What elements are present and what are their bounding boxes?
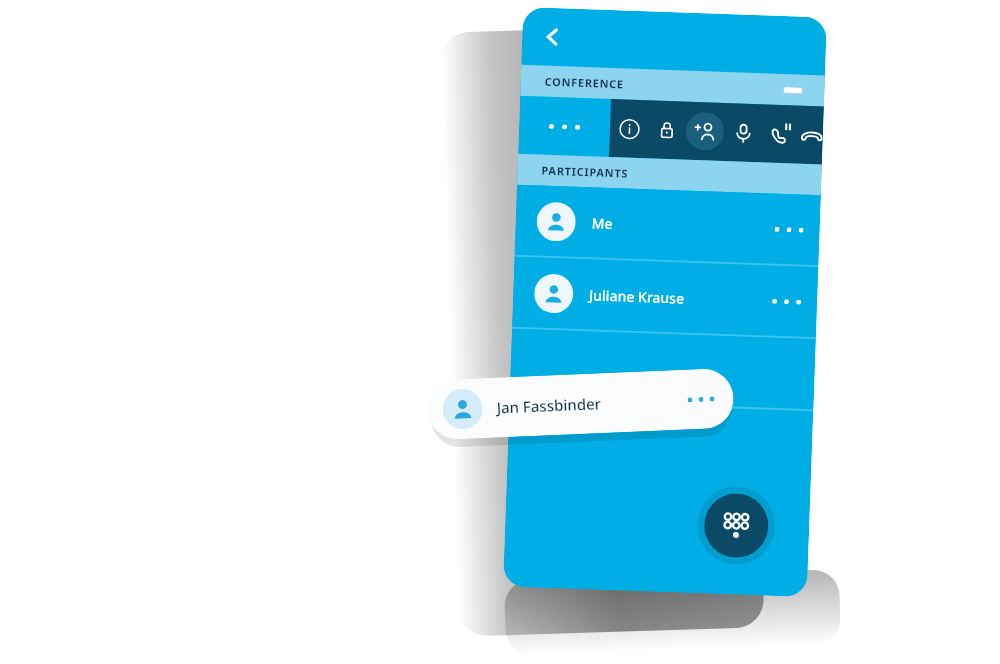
button[interactable]: More conference options [518,96,611,157]
button[interactable]: Lock conference [647,110,687,150]
button[interactable]: Mute microphone [723,113,763,152]
button[interactable]: Options for Jan Fassbinder [676,375,724,423]
staticText: Me [591,213,613,233]
button[interactable]: PARTICIPANTS [517,154,822,195]
button[interactable] [509,329,816,409]
button[interactable]: Hold call [761,114,801,154]
staticText: Jan Fassbinder [496,393,602,417]
staticText: Juliane Krause [589,285,684,308]
button[interactable]: End call [799,116,824,154]
button[interactable]: Add participant [685,112,725,151]
button[interactable]: CONFERENCE [520,65,825,106]
button[interactable]: Back [529,14,575,60]
staticText: CONFERENCE [544,74,625,91]
button[interactable]: Me [515,185,821,265]
button[interactable]: Dial pad [696,485,777,566]
button[interactable]: Options for Me [765,205,812,253]
staticText: PARTICIPANTS [541,163,629,181]
button[interactable]: Conference information [609,109,649,148]
button[interactable]: Juliane Krause [512,257,818,337]
button[interactable]: Options for Juliane Krause [762,277,810,325]
button[interactable]: Jan Fassbinder [426,368,735,440]
